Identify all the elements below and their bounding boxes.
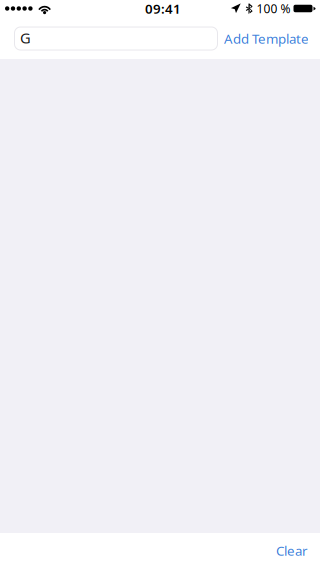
button[interactable]: G	[14, 26, 218, 50]
staticText: 09:41	[145, 0, 181, 17]
staticText: Add Template	[224, 30, 309, 47]
staticText: Clear	[276, 542, 308, 559]
button[interactable]: Add Template	[224, 21, 309, 55]
staticText: 100 %	[256, 0, 290, 16]
staticText: G	[20, 28, 31, 47]
button[interactable]: Clear	[268, 533, 316, 568]
